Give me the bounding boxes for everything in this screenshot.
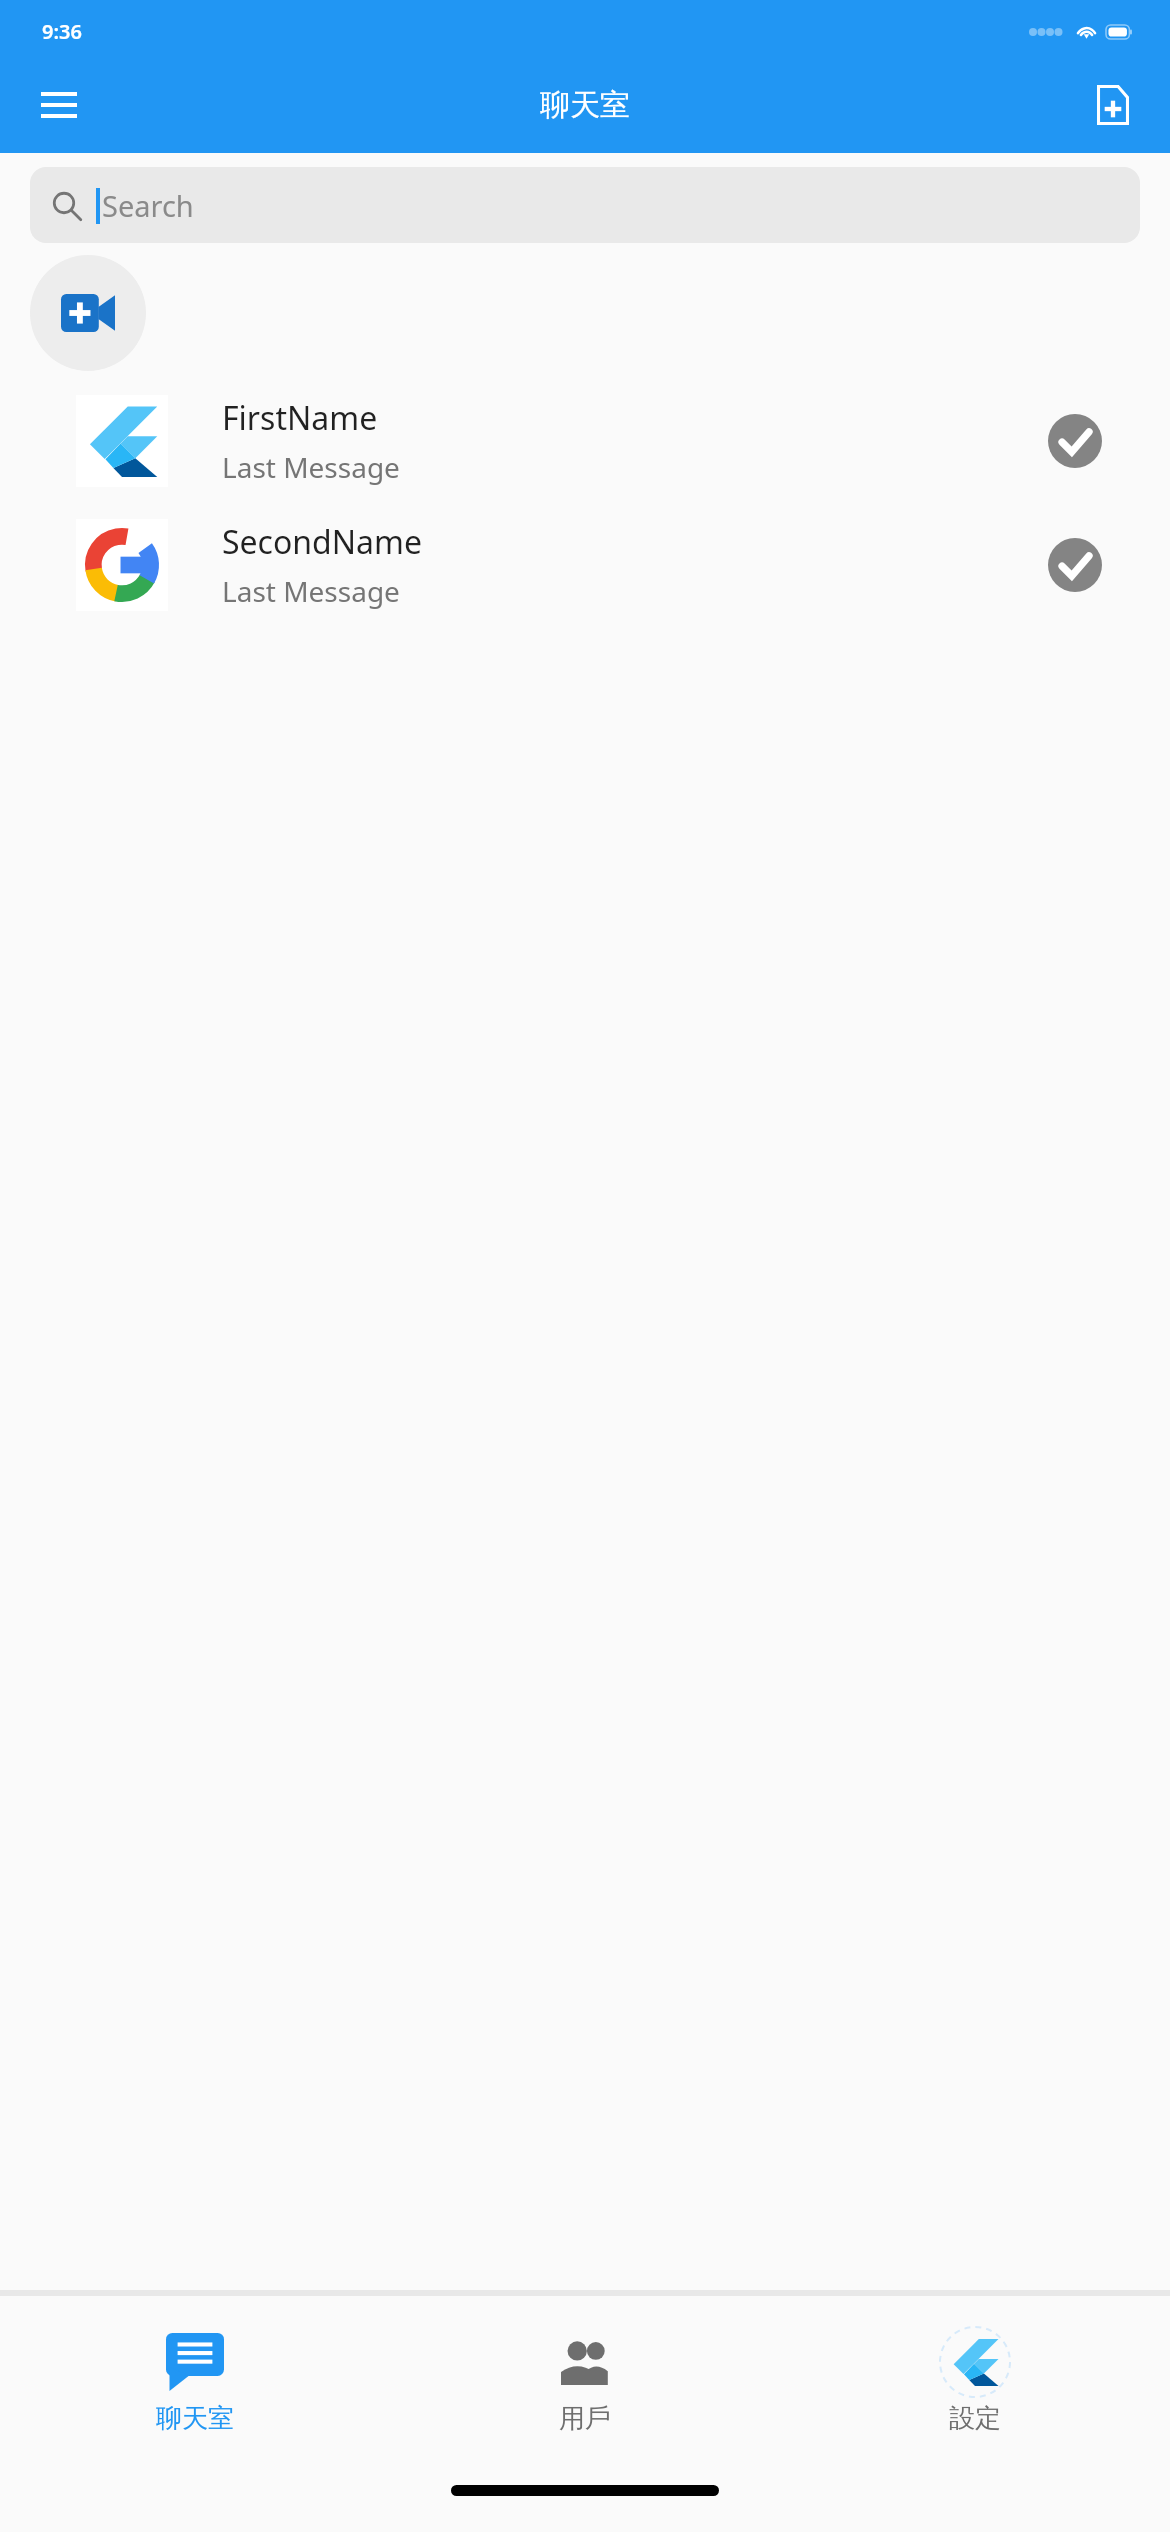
- staticText: Last Message: [222, 572, 400, 610]
- button[interactable]: New video call: [30, 255, 146, 371]
- button[interactable]: Menu: [28, 74, 90, 136]
- staticText: 9:36: [42, 18, 82, 45]
- staticText: FirstName: [222, 396, 378, 440]
- staticText: 設定: [949, 2402, 1001, 2435]
- staticText: SecondName: [222, 520, 423, 564]
- button[interactable]: 聊天室: [0, 2326, 390, 2435]
- button[interactable]: Read: [1042, 408, 1108, 474]
- staticText: 用戶: [559, 2402, 611, 2435]
- staticText: 聊天室: [156, 2402, 234, 2435]
- button[interactable]: New note: [1082, 74, 1144, 136]
- button[interactable]: SecondName: [0, 515, 1170, 615]
- button[interactable]: 用戶: [390, 2326, 780, 2435]
- button[interactable]: 設定: [780, 2326, 1170, 2435]
- staticText: Search: [102, 186, 194, 225]
- button[interactable]: FirstName: [0, 391, 1170, 491]
- staticText: 聊天室: [540, 86, 630, 124]
- button[interactable]: Search: [30, 167, 1140, 243]
- button[interactable]: Read: [1042, 532, 1108, 598]
- staticText: Last Message: [222, 448, 400, 486]
